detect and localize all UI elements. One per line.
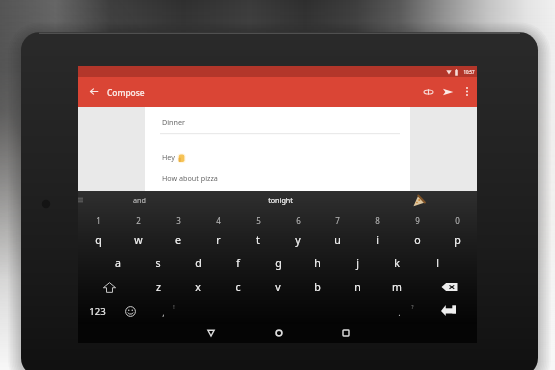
staticText: 7 xyxy=(335,215,340,226)
button[interactable]: b xyxy=(297,275,337,298)
staticText: l xyxy=(436,256,439,270)
button[interactable]: Attach file xyxy=(424,89,433,95)
staticText: b xyxy=(314,280,321,294)
button[interactable]: w xyxy=(118,228,158,251)
button[interactable]: l xyxy=(417,251,457,274)
button[interactable]: 2 xyxy=(118,209,158,231)
staticText: v xyxy=(275,280,281,294)
staticText: p xyxy=(454,233,461,247)
staticText: i xyxy=(376,233,379,247)
button[interactable]: n xyxy=(337,275,377,298)
button[interactable]: z xyxy=(138,275,178,298)
staticText: e xyxy=(175,233,181,247)
staticText: m xyxy=(392,280,402,294)
button[interactable]: y xyxy=(278,228,318,251)
button[interactable]: Pizza emoji xyxy=(413,195,425,207)
staticText: q xyxy=(95,233,102,247)
button[interactable]: 3 xyxy=(158,209,198,231)
staticText: 8 xyxy=(375,215,380,226)
button[interactable]: u xyxy=(317,228,357,251)
staticText: tonight xyxy=(268,195,293,205)
button[interactable]: Backspace xyxy=(441,282,458,292)
staticText: Compose xyxy=(107,87,145,98)
button[interactable]: x xyxy=(178,275,218,298)
staticText: s xyxy=(155,256,161,270)
button[interactable]: 5 xyxy=(238,209,278,231)
button[interactable]: Back xyxy=(206,328,216,338)
button[interactable]: k xyxy=(377,251,417,274)
button[interactable]: 4 xyxy=(198,209,238,231)
button[interactable]: Keyboard options xyxy=(78,197,83,203)
staticText: c xyxy=(235,280,241,294)
button[interactable]: Emoji xyxy=(125,306,136,317)
button[interactable]: a xyxy=(98,251,138,274)
button[interactable]: m xyxy=(377,275,417,298)
button[interactable]: o xyxy=(397,228,437,251)
button[interactable]: Send xyxy=(442,87,454,97)
staticText: 3 xyxy=(176,215,181,226)
staticText: 6 xyxy=(296,215,301,226)
staticText: and xyxy=(133,195,146,205)
staticText: g xyxy=(275,256,282,270)
button[interactable]: Shift xyxy=(103,282,116,293)
staticText: How about pizza xyxy=(162,173,218,183)
staticText: ! xyxy=(173,303,175,310)
staticText: y xyxy=(295,233,301,247)
staticText: o xyxy=(414,233,421,247)
staticText: w xyxy=(134,233,143,247)
button[interactable]: e xyxy=(158,228,198,251)
button[interactable]: s xyxy=(138,251,178,274)
button[interactable]: 1 xyxy=(78,209,118,231)
staticText: h xyxy=(314,256,321,270)
staticText: k xyxy=(394,256,400,270)
button[interactable]: v xyxy=(258,275,298,298)
staticText: t xyxy=(256,233,260,247)
button[interactable]: f xyxy=(218,251,258,274)
staticText: 123 xyxy=(89,305,106,318)
button[interactable]: Navigate up xyxy=(90,88,98,95)
button[interactable]: 0 xyxy=(437,209,477,231)
staticText: Hey xyxy=(162,152,175,162)
staticText: 2 xyxy=(136,215,141,226)
button[interactable]: 9 xyxy=(397,209,437,231)
staticText: ? xyxy=(411,303,414,310)
button[interactable]: j xyxy=(337,251,377,274)
button[interactable]: p xyxy=(437,228,477,251)
button[interactable]: i xyxy=(357,228,397,251)
staticText: 10:57 xyxy=(463,69,475,75)
staticText: 1 xyxy=(96,215,101,226)
button[interactable]: More options xyxy=(463,87,471,96)
staticText: f xyxy=(236,256,240,270)
staticText: j xyxy=(356,256,359,270)
button[interactable]: Wi-Fi xyxy=(446,69,452,75)
staticText: x xyxy=(195,280,201,294)
staticText: 5 xyxy=(256,215,261,226)
staticText: n xyxy=(354,280,361,294)
staticText: 0 xyxy=(455,215,460,226)
button[interactable]: 7 xyxy=(317,209,357,231)
staticText: . xyxy=(398,306,401,318)
button[interactable]: Home xyxy=(274,328,284,338)
button[interactable]: d xyxy=(178,251,218,274)
button[interactable]: t xyxy=(238,228,278,251)
button[interactable]: 6 xyxy=(278,209,318,231)
staticText: 9 xyxy=(415,215,420,226)
button[interactable]: Battery xyxy=(454,69,459,76)
button[interactable]: g xyxy=(258,251,298,274)
button[interactable]: Recent apps xyxy=(341,328,351,338)
staticText: u xyxy=(334,233,341,247)
staticText: z xyxy=(156,280,161,294)
button[interactable]: Enter xyxy=(441,305,456,316)
staticText: r xyxy=(216,233,221,247)
staticText: 4 xyxy=(216,215,221,226)
button[interactable]: h xyxy=(297,251,337,274)
button[interactable]: c xyxy=(218,275,258,298)
staticText: a xyxy=(115,256,121,270)
button[interactable]: 8 xyxy=(357,209,397,231)
staticText: , xyxy=(162,306,165,318)
button[interactable]: r xyxy=(198,228,238,251)
staticText: d xyxy=(195,256,202,270)
button[interactable]: q xyxy=(78,228,118,251)
staticText: Dinner xyxy=(162,117,186,127)
